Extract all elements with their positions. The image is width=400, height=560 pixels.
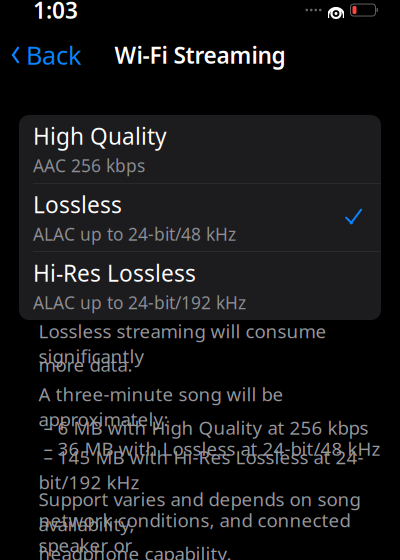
staticText: Wi-Fi Streaming	[114, 40, 285, 70]
staticText: AAC 256 kbps	[33, 154, 145, 177]
staticText: Support varies and depends on song avail…	[38, 487, 360, 536]
staticText: 1:03	[33, 0, 78, 25]
staticText: – 6 MB with High Quality at 256 kbps	[38, 415, 368, 440]
staticText: headphone capability.	[38, 541, 231, 560]
button[interactable]: Back	[0, 33, 94, 77]
staticText: Back	[26, 38, 82, 72]
staticText: A three-minute song will be approximatel…	[38, 382, 283, 431]
button[interactable]: Hi-Res Lossless	[19, 252, 381, 320]
staticText: more data.	[38, 352, 132, 377]
staticText: ALAC up to 24-bit/192 kHz	[33, 291, 246, 314]
staticText: High Quality	[33, 121, 167, 151]
staticText: – 145 MB with Hi-Res Lossless at 24-bit/…	[38, 445, 363, 494]
button[interactable]: Lossless	[19, 183, 381, 251]
staticText: Hi-Res Lossless	[33, 258, 196, 288]
staticText: network conditions, and connected speake…	[38, 508, 350, 557]
staticText: ALAC up to 24-bit/48 kHz	[33, 222, 236, 245]
staticText: – 36 MB with Lossless at 24-bit/48 kHz	[38, 436, 380, 461]
button[interactable]: High Quality	[19, 115, 381, 183]
staticText: Lossless streaming will consume signific…	[38, 319, 326, 368]
staticText: Lossless	[33, 189, 122, 219]
